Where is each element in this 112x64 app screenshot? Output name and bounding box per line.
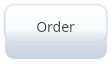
staticText: Order [36,17,75,36]
button[interactable]: Order [5,5,107,59]
